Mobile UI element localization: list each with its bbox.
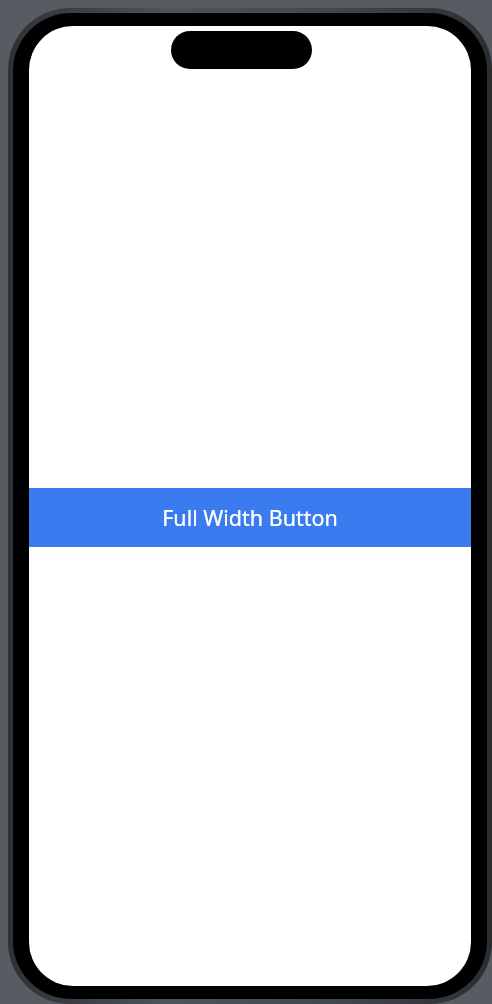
button[interactable]: Full Width Button — [29, 488, 471, 547]
staticText: Full Width Button — [162, 503, 338, 532]
